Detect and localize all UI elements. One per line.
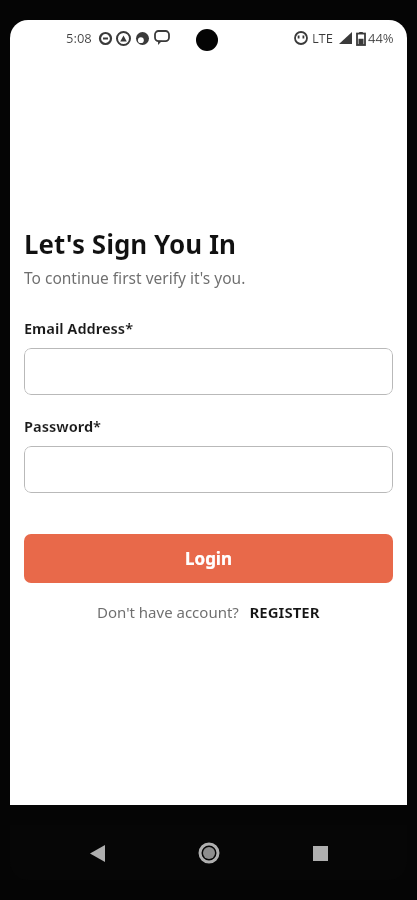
staticText: To continue first verify it's you. [24,267,246,288]
button[interactable]: REGISTER [249,602,320,622]
button[interactable]: Login [24,534,393,583]
button[interactable]: Password input [24,446,393,493]
staticText: Let's Sign You In [24,226,236,261]
button[interactable]: Back [73,829,121,877]
staticText: Password* [24,416,101,436]
staticText: 5:08 [66,29,92,47]
staticText: REGISTER [249,602,320,622]
staticText: Email Address* [24,318,133,338]
staticText: Don't have account? [97,602,239,622]
button[interactable]: Home [185,829,233,877]
button[interactable]: Email Address input [24,348,393,395]
button[interactable]: Recent apps [296,829,344,877]
staticText: Login [185,547,233,570]
staticText: LTE [312,29,334,47]
staticText: 44% [368,29,394,47]
